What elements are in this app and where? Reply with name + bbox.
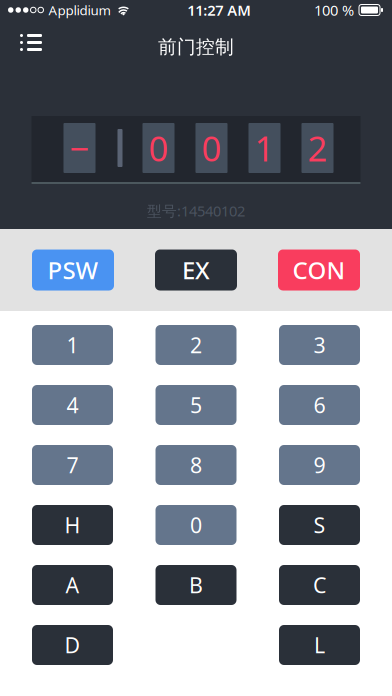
button[interactable]: 2 bbox=[155, 325, 236, 365]
staticText: 0 bbox=[148, 125, 168, 171]
staticText: 0 bbox=[201, 125, 221, 171]
button[interactable]: 3 bbox=[279, 325, 360, 365]
button[interactable]: A bbox=[32, 565, 113, 605]
button[interactable]: EX bbox=[155, 249, 237, 290]
button[interactable]: B bbox=[155, 565, 236, 605]
button[interactable]: 8 bbox=[155, 445, 236, 485]
staticText: 6 bbox=[313, 391, 325, 419]
button[interactable]: D bbox=[32, 625, 113, 665]
button[interactable]: 9 bbox=[279, 445, 360, 485]
staticText: Applidium bbox=[48, 1, 110, 19]
staticText: − bbox=[69, 125, 89, 171]
staticText: PSW bbox=[47, 254, 98, 286]
staticText: 2 bbox=[307, 125, 327, 171]
staticText: 8 bbox=[190, 451, 202, 479]
staticText: 11:27 AM bbox=[187, 0, 251, 20]
staticText: B bbox=[189, 571, 203, 599]
button[interactable]: S bbox=[279, 505, 360, 545]
staticText: 3 bbox=[313, 331, 325, 359]
staticText: 100 % bbox=[314, 0, 354, 20]
staticText: 前门控制 bbox=[158, 35, 234, 58]
button[interactable]: 6 bbox=[279, 385, 360, 425]
button[interactable]: 1 bbox=[32, 325, 113, 365]
staticText: 2 bbox=[190, 331, 202, 359]
button[interactable]: C bbox=[279, 565, 360, 605]
button[interactable]: PSW bbox=[32, 249, 114, 290]
staticText: 型号:14540102 bbox=[147, 201, 245, 220]
button[interactable]: 5 bbox=[155, 385, 236, 425]
staticText: A bbox=[65, 571, 79, 599]
staticText: EX bbox=[182, 254, 210, 286]
staticText: C bbox=[313, 571, 326, 599]
staticText: 5 bbox=[190, 391, 202, 419]
staticText: D bbox=[64, 631, 80, 659]
button[interactable]: 4 bbox=[32, 385, 113, 425]
button[interactable]: CON bbox=[278, 249, 360, 290]
button[interactable]: H bbox=[32, 505, 113, 545]
staticText: 0 bbox=[190, 511, 202, 539]
staticText: 4 bbox=[66, 391, 78, 419]
staticText: H bbox=[64, 511, 80, 539]
button[interactable]: L bbox=[279, 625, 360, 665]
staticText: L bbox=[314, 631, 325, 659]
staticText: 1 bbox=[66, 331, 78, 359]
staticText: 9 bbox=[313, 451, 325, 479]
button[interactable]: Menu bbox=[0, 20, 56, 64]
staticText: 1 bbox=[254, 125, 274, 171]
button[interactable]: 7 bbox=[32, 445, 113, 485]
button[interactable]: 0 bbox=[155, 505, 236, 545]
staticText: S bbox=[313, 511, 325, 539]
staticText: CON bbox=[292, 254, 345, 286]
staticText: 7 bbox=[66, 451, 78, 479]
